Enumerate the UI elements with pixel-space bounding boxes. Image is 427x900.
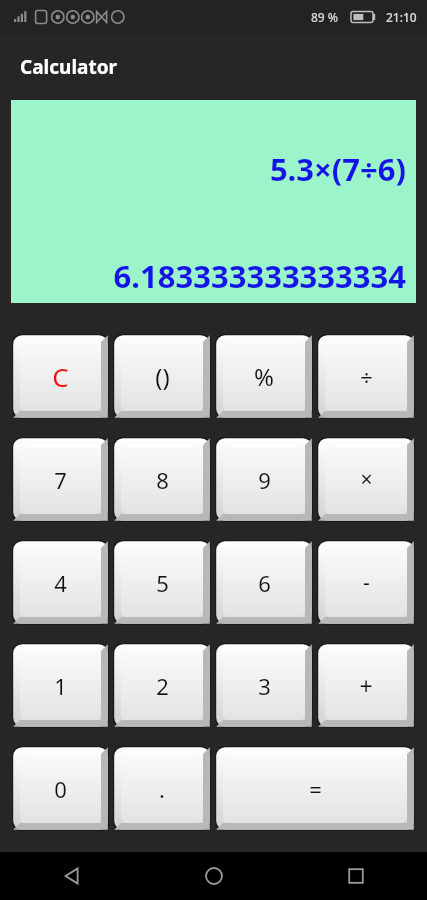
staticText: 3 (258, 671, 271, 701)
staticText: + (359, 670, 373, 701)
button[interactable]: × (317, 437, 415, 522)
staticText: 8 (156, 465, 169, 495)
staticText: 89 % (311, 9, 339, 25)
button[interactable]: 5 (113, 540, 211, 625)
staticText: 7 (54, 465, 67, 495)
button[interactable]: 8 (113, 437, 211, 522)
staticText: () (155, 360, 170, 393)
staticText: - (363, 568, 370, 597)
staticText: 1 (54, 671, 67, 701)
button[interactable]: + (317, 643, 415, 728)
staticText: 2 (156, 671, 169, 701)
button[interactable]: 7 (12, 437, 109, 522)
staticText: % (254, 360, 274, 393)
staticText: 21:10 (386, 9, 417, 25)
button[interactable]: C (12, 334, 109, 419)
button[interactable]: - (317, 540, 415, 625)
staticText: . (159, 774, 165, 804)
button[interactable]: 2 (113, 643, 211, 728)
button[interactable]: 9 (215, 437, 313, 522)
button[interactable]: ÷ (317, 334, 415, 419)
button[interactable]: 3 (215, 643, 313, 728)
staticText: 6.183333333333334 (113, 255, 406, 297)
staticText: = (309, 774, 322, 804)
button[interactable]: () (113, 334, 211, 419)
button[interactable]: . (113, 746, 211, 831)
button[interactable]: 1 (12, 643, 109, 728)
button[interactable]: Home (143, 852, 285, 900)
staticText: 5 (156, 568, 169, 598)
button[interactable]: = (215, 746, 415, 831)
staticText: Calculator (20, 54, 118, 80)
staticText: 4 (54, 568, 67, 598)
staticText: 6 (258, 568, 271, 598)
staticText: × (360, 465, 373, 494)
staticText: 5.3×(7÷6) (269, 148, 406, 190)
staticText: C (52, 359, 69, 394)
button[interactable]: Recent apps (285, 852, 427, 900)
button[interactable]: 6 (215, 540, 313, 625)
staticText: ÷ (360, 362, 373, 392)
staticText: 0 (54, 774, 67, 804)
button[interactable]: Back (0, 852, 143, 900)
button[interactable]: 0 (12, 746, 109, 831)
button[interactable]: 4 (12, 540, 109, 625)
button[interactable]: % (215, 334, 313, 419)
staticText: 9 (258, 465, 271, 495)
